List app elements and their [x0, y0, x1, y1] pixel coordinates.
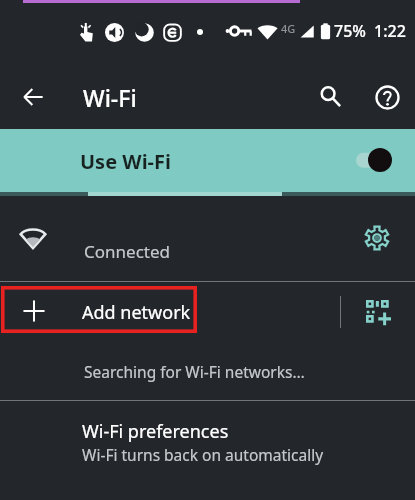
- button[interactable]: Wi-Fi preferences: [0, 401, 415, 500]
- button[interactable]: Back: [11, 75, 55, 119]
- button[interactable]: Use Wi-Fi: [0, 129, 415, 192]
- staticText: Wi-Fi preferences: [82, 419, 229, 444]
- staticText: Searching for Wi-Fi networks…: [84, 361, 305, 382]
- staticText: Wi-Fi turns back on automatically: [82, 444, 324, 465]
- button[interactable]: Network settings: [356, 217, 398, 259]
- staticText: 4G: [281, 21, 296, 36]
- staticText: Add network: [82, 300, 191, 325]
- staticText: 75%: [334, 20, 366, 42]
- button[interactable]: Scan QR code: [356, 290, 400, 334]
- staticText: Connected: [84, 240, 170, 263]
- staticText: Wi-Fi: [83, 82, 137, 113]
- button[interactable]: Search: [309, 75, 353, 119]
- button[interactable]: Help: [365, 75, 409, 119]
- staticText: 1:22: [374, 20, 406, 42]
- button[interactable]: Add network: [4, 287, 198, 335]
- button[interactable]: Connected: [0, 196, 415, 281]
- staticText: Use Wi-Fi: [80, 148, 171, 175]
